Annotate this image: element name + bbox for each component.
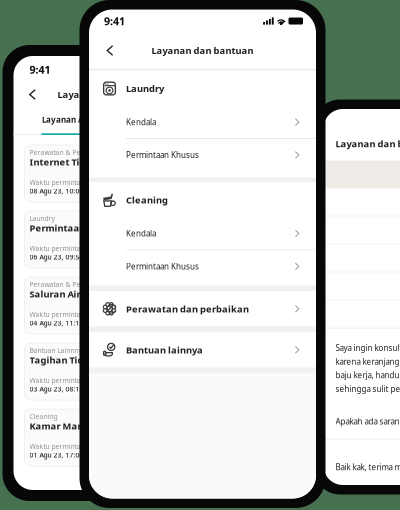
- button[interactable]: Cleaning: [89, 182, 316, 217]
- button[interactable]: Perawatan & Perbaikan: [24, 145, 192, 202]
- button[interactable]: Laundry: [89, 71, 316, 106]
- staticText: Layanan Aktif: [42, 114, 97, 125]
- staticText: Bantuan lainnya: [126, 344, 203, 356]
- button[interactable]: Bantuan Lainnnya: [24, 343, 192, 400]
- staticText: 04 Agu 23, 11:12 WIB: [29, 319, 97, 327]
- staticText: Kamar Mandi Kotor: [29, 420, 120, 432]
- staticText: baju kerja, handuk dan pakaian santai: [335, 370, 400, 380]
- button[interactable]: Layanan Aktif: [41, 106, 97, 135]
- staticText: 06 Agu 23, 09:50 WIB: [29, 253, 97, 261]
- staticText: Waktu permintaan:: [29, 178, 90, 187]
- staticText: 01 Agu 23, 17:00 WIB: [29, 451, 97, 459]
- staticText: Cleaning: [29, 412, 57, 421]
- button[interactable]: Perawatan & Perbaikan: [24, 277, 192, 334]
- button[interactable]: Back: [22, 84, 42, 104]
- button[interactable]: Riwayat: [97, 106, 153, 135]
- staticText: Saluran Air Tersumbat: [29, 288, 133, 300]
- staticText: 08 Agu 23, 10:00 WIB: [29, 187, 97, 195]
- staticText: Layanan dan bantuan: [151, 44, 253, 57]
- button[interactable]: Perawatan dan perbaikan: [89, 291, 316, 326]
- button[interactable]: Permintaan Khusus: [89, 250, 316, 282]
- staticText: Bantuan Lainnnya: [29, 346, 85, 355]
- staticText: Perawatan dan perbaikan: [126, 303, 249, 315]
- staticText: Perawatan & Perbaikan: [29, 148, 105, 157]
- staticText: Laundry: [126, 82, 164, 95]
- staticText: sehingga sulit pencuciannya: [335, 383, 400, 394]
- staticText: Apakah ada saran dari tuannya!: [335, 416, 400, 427]
- staticText: Riwayat: [111, 114, 139, 125]
- staticText: Layanan dan bantuan: [335, 137, 400, 150]
- button[interactable]: Kendala: [89, 217, 316, 250]
- staticText: 9:41: [104, 14, 125, 28]
- button[interactable]: Laundry: [24, 211, 192, 268]
- staticText: Layanan dan bantuan: [57, 88, 159, 101]
- staticText: Internet Tidak Stabil: [29, 156, 126, 168]
- staticText: Cleaning: [126, 194, 168, 206]
- staticText: karena keranjang saya penuh dengan: [335, 356, 400, 367]
- staticText: Permintaan Khusus: [126, 261, 199, 272]
- staticText: Waktu permintaan:: [29, 310, 90, 319]
- staticText: Permintaan Khusus: [29, 222, 121, 234]
- button[interactable]: Bantuan lainnya: [89, 332, 316, 367]
- button[interactable]: Cleaning: [24, 409, 192, 466]
- staticText: Baik kak, terima makasih.: [335, 462, 400, 472]
- staticText: Kendala: [126, 228, 156, 239]
- button[interactable]: Back: [99, 39, 121, 61]
- staticText: 03 Agu 23, 08:15 WIB: [29, 385, 97, 393]
- button[interactable]: Permintaan Khusus: [89, 139, 316, 171]
- staticText: 9:41: [29, 62, 50, 77]
- staticText: Waktu permintaan:: [29, 244, 90, 253]
- staticText: Permintaan Khusus: [126, 150, 199, 160]
- button[interactable]: Kendala: [89, 106, 316, 138]
- staticText: Kendala: [126, 117, 156, 127]
- staticText: Waktu permintaan:: [29, 442, 90, 451]
- staticText: Perawatan & Perbaikan: [29, 280, 105, 289]
- staticText: Saya ingin konsultasi perihal laundry: [335, 343, 400, 353]
- staticText: Tagihan Tidak Sesuai: [29, 354, 128, 366]
- staticText: Laundry: [29, 214, 54, 223]
- staticText: Waktu permintaan:: [29, 376, 90, 385]
